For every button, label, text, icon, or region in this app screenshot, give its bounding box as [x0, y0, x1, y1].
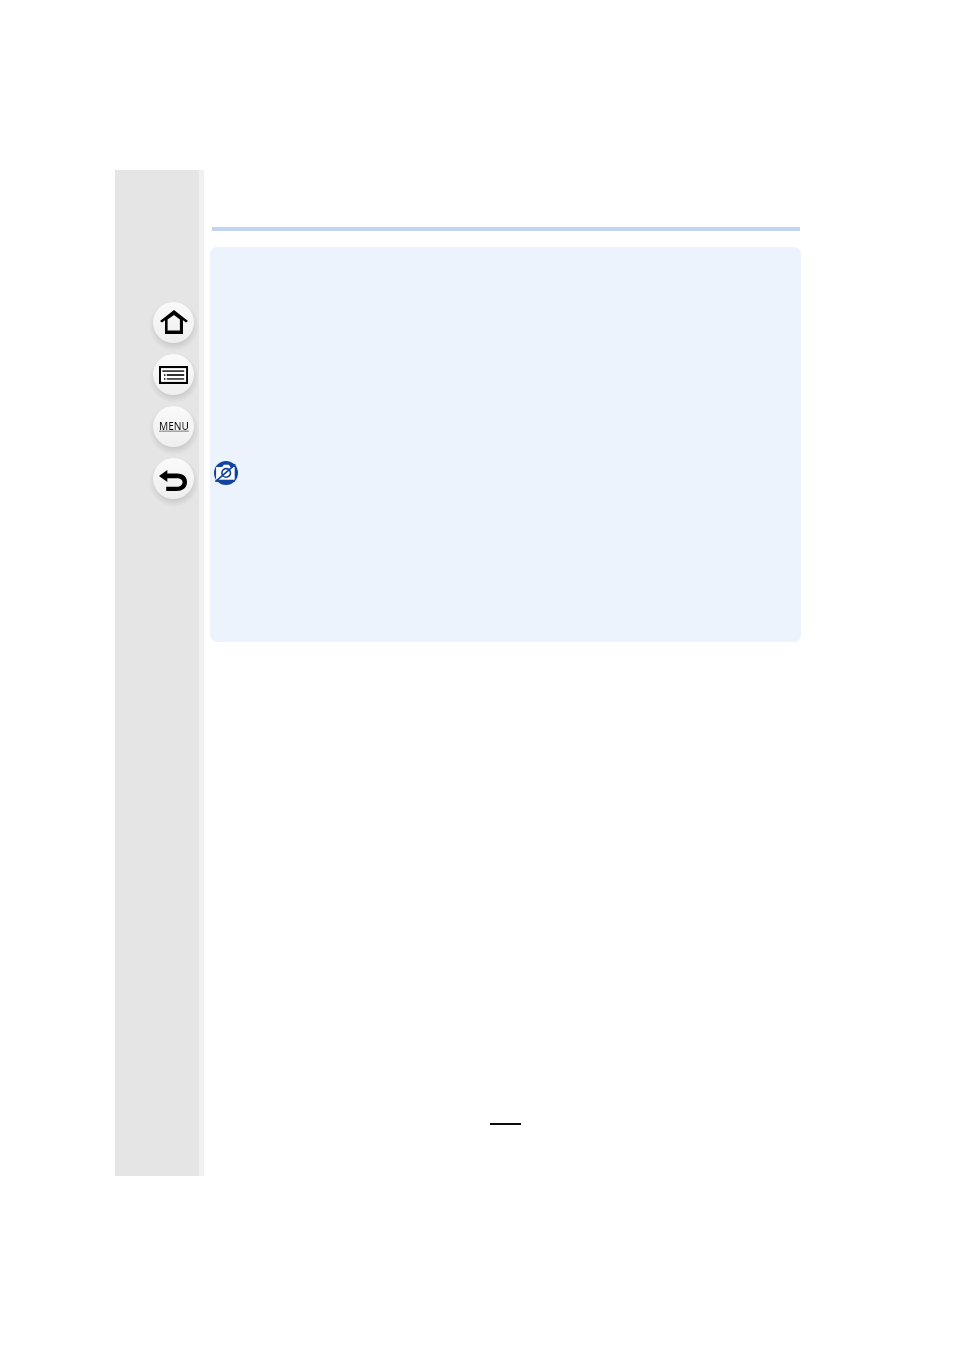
button[interactable]: Back — [148, 453, 199, 504]
button[interactable]: Table of contents — [148, 349, 199, 400]
button[interactable]: Menu — [148, 401, 199, 452]
button[interactable]: Home — [148, 297, 199, 348]
staticText: MENU — [159, 419, 189, 433]
